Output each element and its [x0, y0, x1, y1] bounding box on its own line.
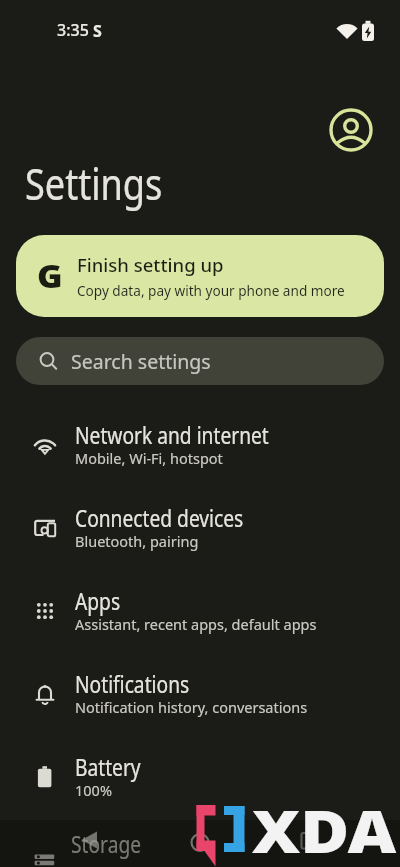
button[interactable]: Search settings: [16, 337, 384, 385]
button[interactable]: [327, 106, 375, 154]
staticText: Apps: [75, 584, 121, 617]
staticText: Notification history, conversations: [75, 697, 308, 717]
staticText: XDA: [252, 790, 397, 867]
staticText: Copy data, pay with your phone and more: [77, 281, 345, 300]
button[interactable]: [0, 820, 400, 867]
staticText: Assistant, recent apps, default apps: [75, 614, 317, 634]
staticText: Connected devices: [75, 501, 244, 534]
staticText: G: [37, 255, 63, 297]
button[interactable]: Notifications: [0, 652, 400, 735]
staticText: Finish setting up: [77, 252, 224, 277]
button[interactable]: Battery: [0, 735, 400, 818]
staticText: 3:35: [57, 19, 89, 41]
staticText: Search settings: [71, 348, 211, 375]
button[interactable]: Connected devices: [0, 486, 400, 569]
staticText: Battery: [75, 750, 141, 783]
staticText: Settings: [25, 153, 163, 213]
staticText: Network and internet: [75, 418, 269, 451]
staticText: 100%: [75, 780, 112, 800]
staticText: Mobile, Wi-Fi, hotspot: [75, 448, 223, 468]
button[interactable]: Apps: [0, 569, 400, 652]
staticText: S: [93, 20, 102, 42]
staticText: Bluetooth, pairing: [75, 531, 199, 551]
staticText: Notifications: [75, 667, 189, 700]
button[interactable]: G: [16, 235, 384, 317]
button[interactable]: Network and internet: [0, 403, 400, 486]
staticText: Storage: [71, 827, 141, 860]
